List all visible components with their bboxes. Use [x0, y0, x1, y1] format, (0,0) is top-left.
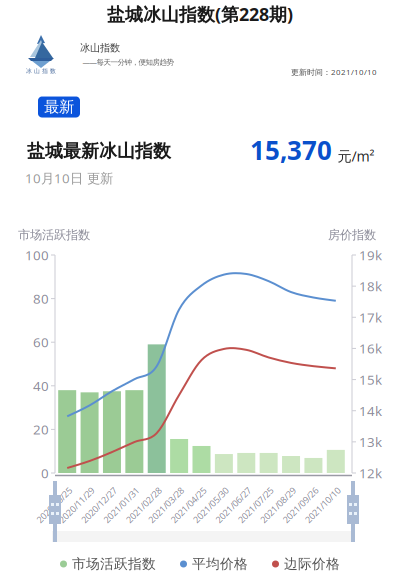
staticText: 19k [359, 246, 382, 264]
staticText: 13k [359, 433, 382, 451]
staticText: 15k [359, 370, 382, 389]
staticText: 12k [359, 464, 382, 482]
staticText: 2021/03/28 [143, 499, 189, 511]
staticText: 2021/07/25 [233, 499, 279, 511]
staticText: 更新时间：2021/10/10 [291, 67, 377, 77]
staticText: 18k [359, 277, 382, 295]
staticText: 0 [41, 464, 49, 482]
staticText: 2020/11/29 [54, 499, 100, 511]
staticText: 房价指数 [328, 227, 376, 243]
staticText: 2021/02/28 [121, 499, 167, 511]
staticText: 2021/09/26 [277, 499, 323, 511]
staticText: 2020/12/27 [76, 499, 122, 511]
staticText: 2021/08/29 [255, 499, 301, 511]
staticText: 10月10日 更新 [25, 169, 113, 187]
button[interactable]: 最新 [38, 96, 80, 117]
staticText: 最新 [44, 97, 74, 117]
staticText: 平均价格 [192, 555, 248, 571]
staticText: 冰山指数 [80, 42, 120, 54]
staticText: 冰 山 指 数 [26, 67, 56, 75]
staticText: 16k [359, 339, 382, 357]
staticText: 市场活跃指数 [18, 227, 90, 243]
staticText: 2020/10/25 [31, 499, 77, 511]
staticText: 盐城最新冰山指数 [27, 140, 171, 162]
staticText: 100 [25, 246, 49, 264]
staticText: 14k [359, 402, 382, 420]
staticText: 边际价格 [284, 555, 340, 571]
staticText: 2021/10/10 [300, 499, 346, 511]
staticText: 2021/05/30 [188, 499, 234, 511]
staticText: 20 [33, 420, 49, 438]
staticText: 2021/06/27 [210, 499, 256, 511]
staticText: 17k [359, 308, 382, 326]
staticText: 15,370 [250, 132, 332, 168]
staticText: ——每天一分钟，便知房趋势 [82, 57, 173, 67]
staticText: 80 [33, 289, 49, 308]
staticText: 60 [33, 333, 49, 351]
staticText: 市场活跃指数 [72, 555, 156, 571]
staticText: 40 [33, 377, 49, 395]
staticText: 2021/04/25 [165, 499, 211, 511]
staticText: 盐城冰山指数(第228期) [107, 2, 293, 26]
staticText: 元/m² [337, 146, 374, 166]
staticText: 2021/01/31 [98, 499, 144, 511]
